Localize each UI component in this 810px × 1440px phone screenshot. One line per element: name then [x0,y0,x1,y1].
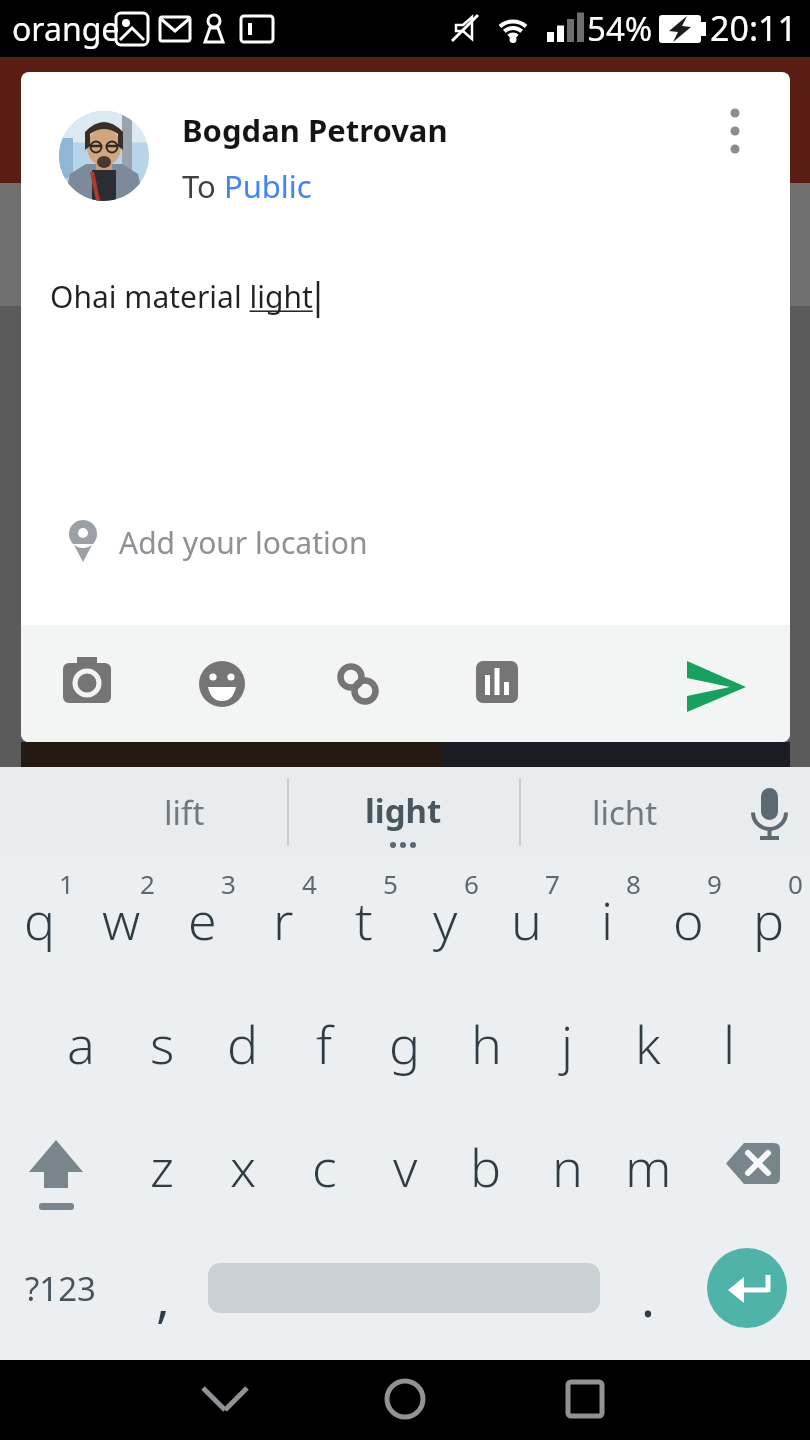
button[interactable] [10,1120,105,1212]
staticText: 8 [626,866,641,901]
button[interactable] [187,650,257,720]
button[interactable]: h [447,993,525,1093]
staticText: b [470,1131,502,1202]
button[interactable]: p [730,871,808,967]
button[interactable]: licht [555,767,695,857]
button[interactable]: w [82,871,160,967]
staticText: s [150,1008,175,1079]
staticText: z [150,1131,175,1202]
button[interactable]: light [333,765,473,855]
staticText: a [67,1008,95,1079]
button[interactable]: l [690,993,768,1093]
staticText: licht [592,790,658,835]
button[interactable] [335,1363,475,1437]
staticText: e [188,884,217,955]
button[interactable]: g [366,993,444,1093]
button[interactable] [680,648,760,723]
button[interactable] [155,1363,295,1437]
staticText: light [365,788,442,833]
button[interactable]: r [244,871,322,967]
button[interactable]: , [133,1246,193,1346]
staticText: i [601,884,614,955]
button[interactable]: To Public [182,164,512,208]
button[interactable] [323,650,393,720]
staticText: 0 [788,866,803,901]
button[interactable] [705,100,765,170]
staticText: l [723,1008,736,1079]
staticText: 2 [140,866,155,901]
staticText: u [511,884,542,955]
button[interactable]: m [609,1116,687,1216]
button[interactable]: ?123 [10,1238,110,1338]
button[interactable]: s [123,993,201,1093]
staticText: , [156,1261,170,1332]
staticText: h [471,1008,502,1079]
staticText: m [625,1131,672,1202]
button[interactable]: Add your location [61,512,461,572]
staticText: x [230,1131,257,1202]
button[interactable]: n [528,1116,606,1216]
button[interactable] [515,1363,655,1437]
staticText: f [316,1008,333,1079]
staticText: orange [12,7,120,51]
button[interactable] [52,650,122,720]
button[interactable]: x [204,1116,282,1216]
button[interactable]: q [1,871,79,967]
staticText: ?123 [25,1266,96,1311]
button[interactable] [705,1120,800,1212]
button[interactable]: o [649,871,727,967]
button[interactable]: f [285,993,363,1093]
staticText: 54% [587,6,653,51]
button[interactable]: a [42,993,120,1093]
staticText: 4 [302,866,317,901]
button[interactable] [707,1248,787,1328]
staticText: Bogdan Petrovan [182,109,448,151]
staticText: Ohai material light [50,276,313,317]
button[interactable]: i [568,871,646,967]
button[interactable]: c [285,1116,363,1216]
staticText: 3 [221,866,236,901]
button[interactable]: lift [114,767,254,857]
staticText: 20:11 [710,5,797,51]
staticText: r [273,884,294,955]
button[interactable]: d [204,993,282,1093]
staticText: w [102,884,141,955]
staticText: 1 [59,866,74,901]
button[interactable]: u [487,871,565,967]
button[interactable]: e [163,871,241,967]
staticText: d [227,1008,259,1079]
button[interactable] [462,650,532,720]
staticText: j [561,1008,574,1079]
staticText: g [389,1008,421,1079]
button[interactable]: z [123,1116,201,1216]
staticText: k [635,1008,661,1079]
button[interactable]: . [618,1246,678,1346]
staticText: 9 [707,866,722,901]
button[interactable]: v [366,1116,444,1216]
staticText: 7 [545,866,560,901]
staticText: c [312,1131,337,1202]
staticText: . [641,1261,655,1332]
staticText: p [753,884,785,955]
staticText: t [355,884,373,955]
staticText: lift [164,790,205,835]
staticText: y [433,884,458,955]
button[interactable] [21,625,790,742]
button[interactable]: b [447,1116,525,1216]
staticText: 5 [383,866,398,901]
staticText: Add your location [119,522,368,563]
staticText: To Public [182,165,312,207]
staticText: o [673,884,704,955]
staticText: n [552,1131,583,1202]
staticText: 6 [464,866,479,901]
button[interactable]: y [406,871,484,967]
staticText: q [24,884,56,955]
button[interactable]: j [528,993,606,1093]
button[interactable]: k [609,993,687,1093]
button[interactable]: t [325,871,403,967]
button[interactable] [735,780,805,846]
staticText: v [393,1131,418,1202]
